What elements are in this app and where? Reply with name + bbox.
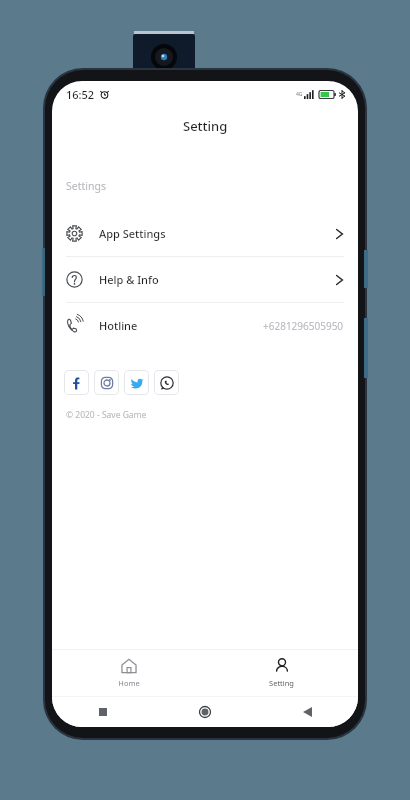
button[interactable]: Setting: [205, 658, 358, 688]
other: Help and Info: [66, 271, 83, 288]
button[interactable]: Hotline: [52, 303, 358, 348]
staticText: Settings: [66, 179, 106, 193]
button[interactable]: Help and Info: [52, 257, 358, 302]
staticText: 16:52: [66, 87, 95, 102]
button[interactable]: Back: [256, 707, 358, 717]
button[interactable]: Home: [154, 706, 256, 718]
staticText: Home: [118, 678, 140, 688]
staticText: 4G: [296, 91, 303, 98]
other: Hotline: [66, 317, 83, 334]
button[interactable]: WhatsApp: [154, 370, 179, 395]
button[interactable]: Recent apps: [52, 708, 154, 716]
button[interactable]: Home: [52, 658, 205, 688]
other: Setting: [274, 658, 290, 674]
button[interactable]: Twitter: [124, 370, 149, 395]
button[interactable]: Instagram: [94, 370, 119, 395]
button[interactable]: App Settings: [52, 211, 358, 256]
other: App Settings: [66, 225, 83, 242]
staticText: Setting: [183, 117, 228, 135]
staticText: +6281296505950: [263, 319, 344, 333]
staticText: Setting: [269, 678, 294, 688]
staticText: Hotline: [99, 318, 138, 333]
staticText: App Settings: [99, 226, 166, 241]
other: Home: [121, 658, 137, 674]
button[interactable]: Facebook: [64, 370, 89, 395]
staticText: © 2020 - Save Game: [66, 409, 147, 421]
staticText: Help & Info: [99, 272, 159, 287]
